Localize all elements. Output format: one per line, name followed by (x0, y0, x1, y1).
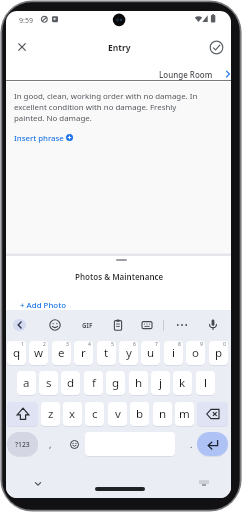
staticText: t (104, 345, 109, 361)
staticText: Insert phrase (14, 133, 64, 144)
staticText: 8 (178, 341, 181, 348)
button[interactable] (14, 39, 30, 55)
button[interactable]: a (17, 371, 36, 395)
button[interactable] (205, 317, 221, 333)
button[interactable] (47, 317, 63, 333)
staticText: 1 (21, 341, 24, 348)
staticText: g (112, 375, 120, 391)
button[interactable] (139, 317, 155, 333)
button[interactable] (197, 478, 211, 488)
staticText: n (159, 406, 167, 422)
button[interactable] (13, 319, 26, 331)
staticText: In good, clean, working order with no da… (14, 91, 198, 124)
staticText: Entry (108, 42, 131, 54)
button[interactable]: j (151, 371, 170, 395)
button[interactable]: q (7, 341, 26, 365)
button[interactable]: y (119, 341, 138, 365)
button[interactable]: i (164, 341, 183, 365)
staticText: 7 (155, 341, 158, 348)
button[interactable]: b (130, 402, 149, 426)
button[interactable] (66, 432, 82, 456)
button[interactable]: . (184, 432, 198, 456)
button[interactable] (7, 402, 38, 426)
button[interactable]: x (63, 402, 82, 426)
staticText: r (81, 345, 86, 361)
staticText: GIF (82, 321, 93, 329)
staticText: k (179, 375, 186, 391)
staticText: j (159, 375, 162, 391)
button[interactable]: ?123 (7, 432, 38, 456)
staticText: . (190, 438, 193, 450)
staticText: a (23, 375, 30, 391)
staticText: c (92, 406, 98, 422)
staticText: p (215, 345, 223, 361)
staticText: + Add Photo (20, 300, 66, 311)
staticText: 6 (133, 341, 136, 348)
button[interactable]: k (173, 371, 192, 395)
staticText: 5 (111, 341, 114, 348)
staticText: ?123 (15, 440, 30, 449)
staticText: 4 (88, 341, 91, 348)
staticText: z (48, 406, 54, 422)
button[interactable]: r (74, 341, 93, 365)
staticText: , (49, 438, 52, 450)
staticText: o (192, 345, 199, 361)
staticText: y (126, 345, 132, 361)
button[interactable]: GIF (78, 319, 96, 331)
staticText: f (92, 375, 96, 391)
button[interactable]: d (61, 371, 80, 395)
staticText: d (67, 375, 75, 391)
button[interactable]: u (141, 341, 160, 365)
staticText: 3 (66, 341, 69, 348)
button[interactable]: m (175, 402, 194, 426)
button[interactable]: n (153, 402, 172, 426)
button[interactable]: g (106, 371, 125, 395)
button[interactable]: Lounge Room (141, 66, 227, 82)
staticText: m (179, 406, 190, 422)
button[interactable]: + Add Photo (20, 299, 90, 311)
button[interactable]: h (129, 371, 148, 395)
button[interactable]: z (41, 402, 60, 426)
staticText: l (204, 375, 207, 391)
button[interactable]: e (52, 341, 71, 365)
staticText: e (58, 345, 65, 361)
staticText: u (147, 345, 155, 361)
button[interactable]: c (85, 402, 104, 426)
staticText: w (34, 345, 44, 361)
button[interactable]: Insert phrase (14, 132, 94, 144)
button[interactable] (197, 432, 228, 456)
button[interactable] (174, 317, 190, 333)
staticText: 9 (200, 341, 203, 348)
staticText: Photos & Maintenance (75, 271, 164, 282)
button[interactable]: s (39, 371, 58, 395)
button[interactable]: , (43, 432, 57, 456)
button[interactable]: o (186, 341, 205, 365)
button[interactable]: v (108, 402, 127, 426)
staticText: 9:59 (19, 16, 33, 26)
button[interactable]: w (29, 341, 48, 365)
staticText: Lounge Room (159, 69, 213, 80)
staticText: v (115, 406, 121, 422)
button[interactable]: f (84, 371, 103, 395)
staticText: h (135, 375, 143, 391)
staticText: i (172, 345, 175, 361)
button[interactable] (110, 317, 126, 333)
staticText: b (136, 406, 144, 422)
staticText: q (13, 345, 21, 361)
button[interactable] (31, 479, 45, 489)
button[interactable] (95, 487, 145, 491)
button[interactable]: t (97, 341, 116, 365)
staticText: 2 (43, 341, 46, 348)
staticText: s (46, 375, 52, 391)
button[interactable]: p (209, 341, 228, 365)
button[interactable] (197, 402, 228, 426)
staticText: 0 (223, 341, 226, 348)
staticText: x (69, 406, 76, 422)
button[interactable]: l (196, 371, 215, 395)
button[interactable] (208, 39, 225, 56)
